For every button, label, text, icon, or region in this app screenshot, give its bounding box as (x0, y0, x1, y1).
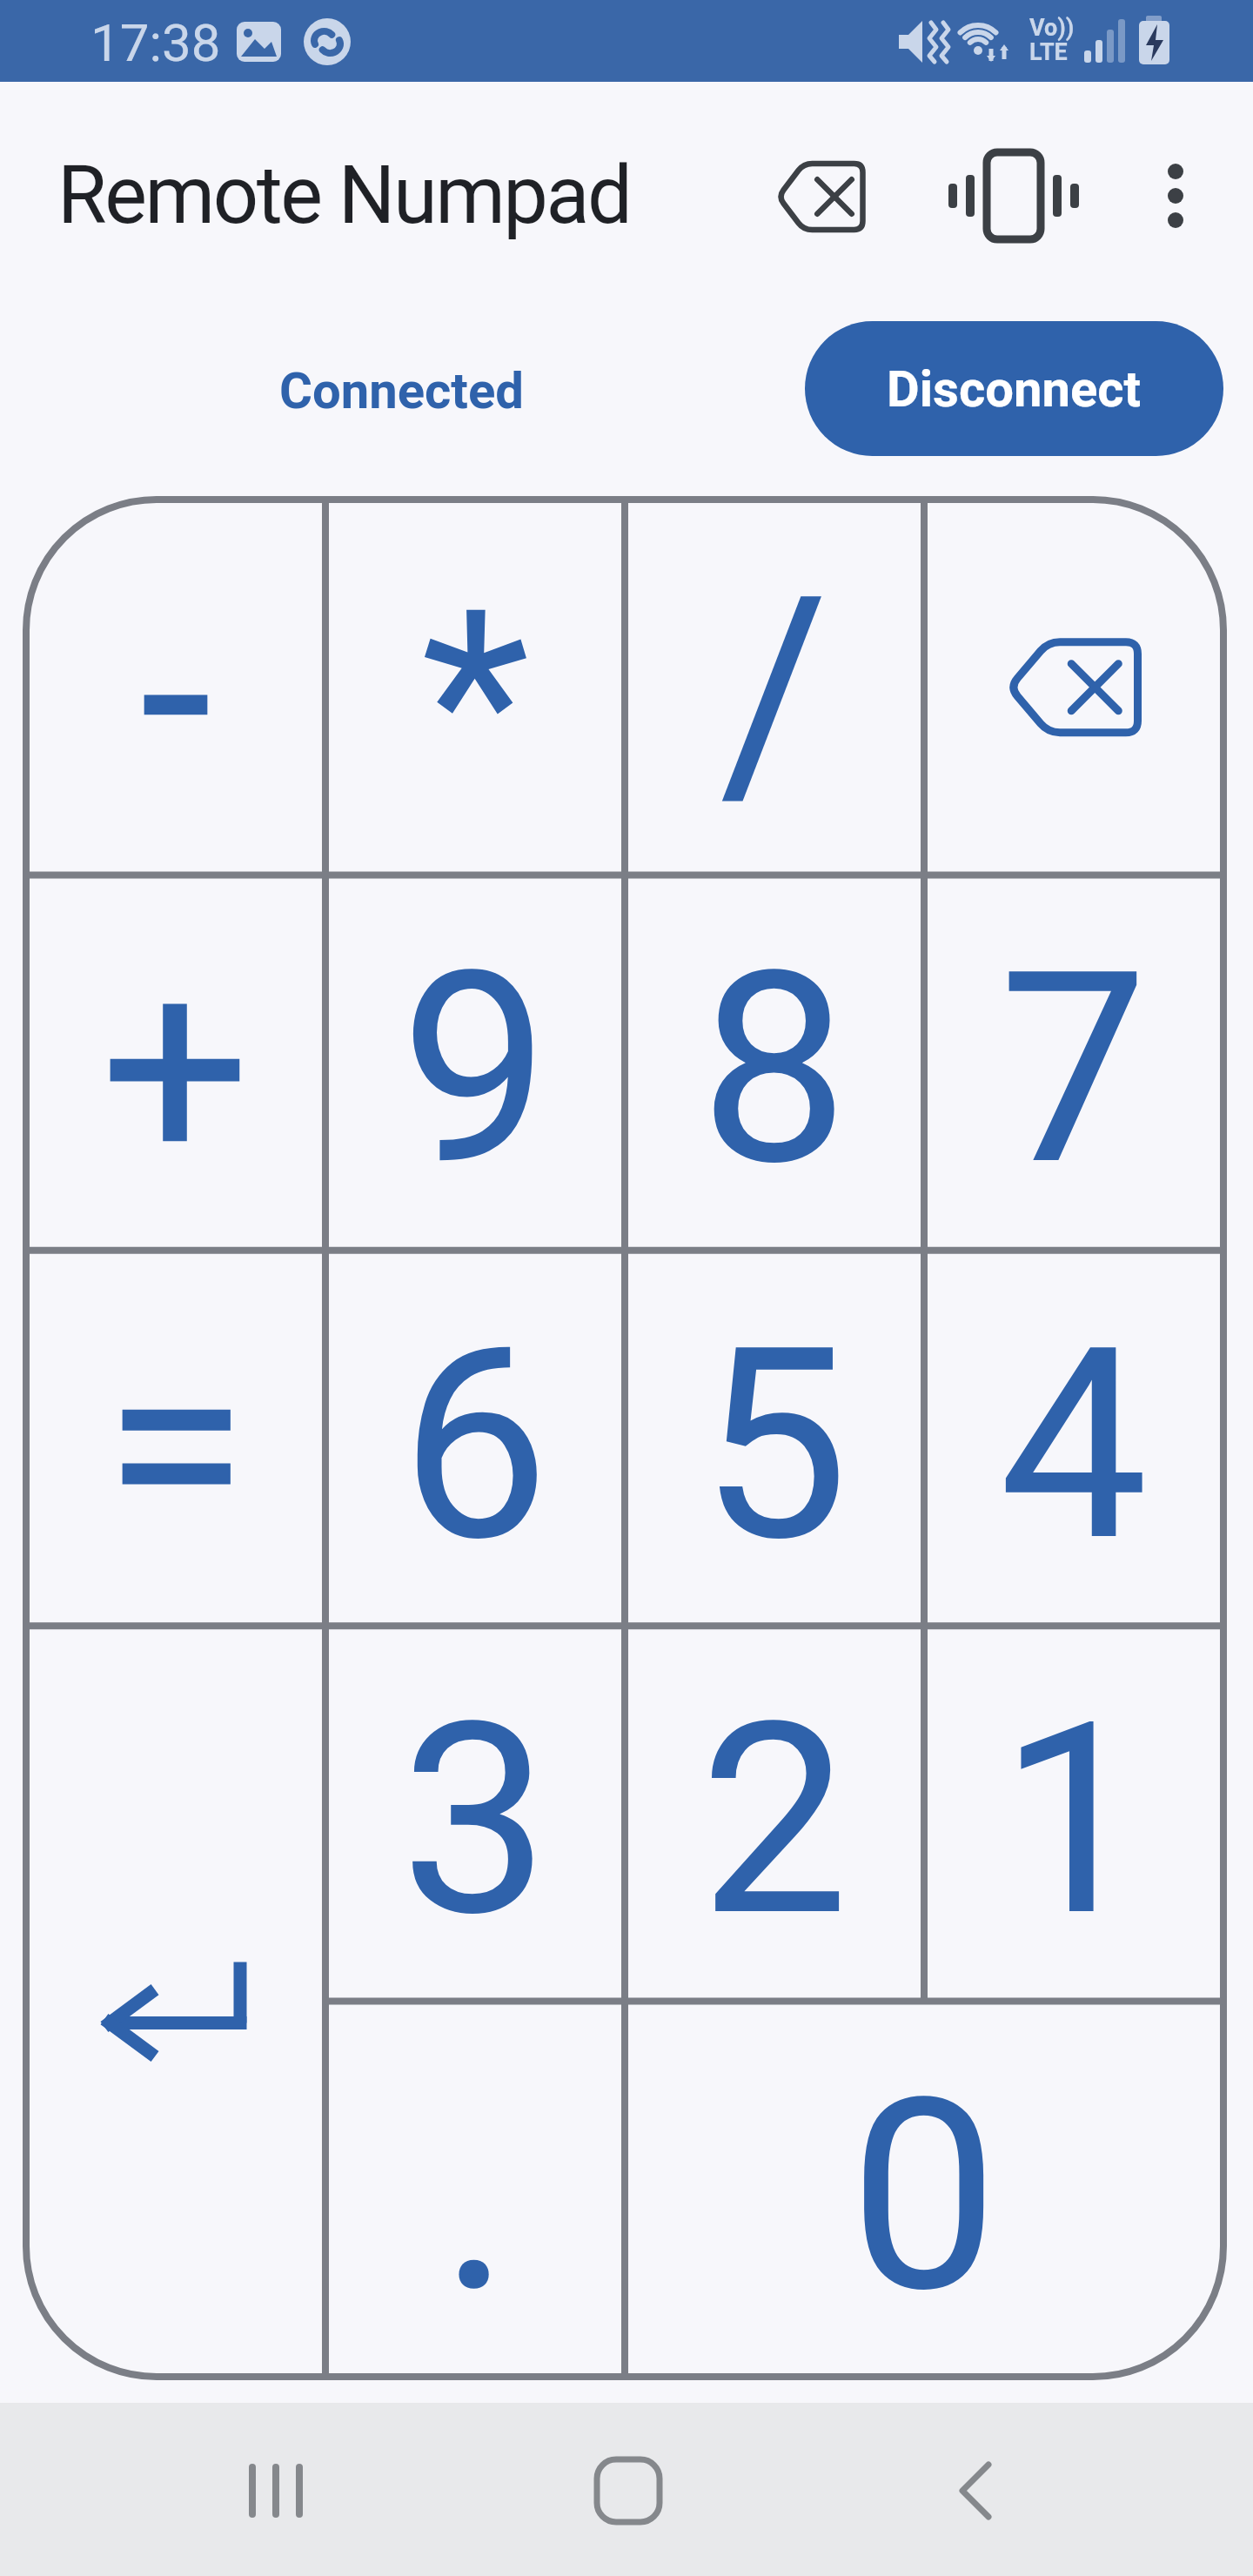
staticText: LTE (1029, 38, 1068, 66)
staticText: 1 (999, 1665, 1149, 1976)
staticText: 17:38 (90, 12, 221, 73)
button[interactable]: 6 (325, 1251, 625, 1626)
button[interactable]: = (26, 1251, 325, 1626)
staticText: - (139, 539, 213, 849)
button[interactable]: + (26, 875, 325, 1250)
button[interactable] (1116, 137, 1235, 255)
button[interactable]: 8 (625, 875, 924, 1250)
button[interactable] (924, 500, 1223, 875)
staticText: 8 (700, 914, 849, 1224)
button[interactable] (191, 2411, 357, 2572)
button[interactable]: 1 (924, 1626, 1223, 2001)
staticText: Connected (279, 361, 525, 420)
staticText: = (103, 1290, 249, 1600)
button[interactable]: * (325, 500, 625, 875)
button[interactable]: 9 (325, 875, 625, 1250)
staticText: . (440, 2041, 511, 2351)
staticText: 0 (849, 2041, 999, 2351)
button[interactable] (26, 1626, 325, 2377)
staticText: 7 (999, 914, 1149, 1224)
button[interactable]: 3 (325, 1626, 625, 2001)
staticText: 6 (400, 1290, 550, 1600)
staticText: Vo)) (1029, 14, 1075, 42)
staticText: 4 (999, 1290, 1149, 1600)
button[interactable]: 5 (625, 1251, 924, 1626)
button[interactable]: 7 (924, 875, 1223, 1250)
button[interactable] (955, 137, 1073, 255)
button[interactable]: . (325, 2002, 625, 2377)
button[interactable]: 0 (625, 2002, 1223, 2377)
staticText: * (421, 555, 530, 851)
staticText: / (720, 539, 829, 849)
button[interactable]: / (625, 500, 924, 875)
button[interactable]: - (26, 500, 325, 875)
staticText: Remote Numpad (57, 149, 631, 243)
staticText: 5 (700, 1290, 849, 1600)
button[interactable] (546, 2411, 711, 2572)
staticText: 2 (700, 1665, 849, 1976)
staticText: + (100, 914, 251, 1224)
button[interactable] (761, 137, 880, 255)
staticText: Disconnect (887, 359, 1142, 419)
staticText: 3 (400, 1665, 550, 1976)
button[interactable] (892, 2411, 1057, 2572)
button[interactable]: Disconnect (805, 321, 1223, 456)
staticText: 9 (400, 914, 550, 1224)
button[interactable]: 4 (924, 1251, 1223, 1626)
button[interactable]: 2 (625, 1626, 924, 2001)
